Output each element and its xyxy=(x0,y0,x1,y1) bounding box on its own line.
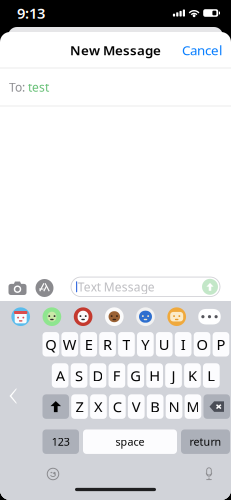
button[interactable]: F xyxy=(108,363,125,388)
staticText: W xyxy=(63,335,77,354)
button[interactable]: Send xyxy=(202,279,218,295)
staticText: U xyxy=(159,335,170,354)
button[interactable]: W xyxy=(61,332,78,357)
button[interactable]: space xyxy=(83,429,177,454)
staticText: L xyxy=(207,366,215,385)
button[interactable]: H xyxy=(146,363,163,388)
staticText: G xyxy=(130,366,141,385)
button[interactable]: C xyxy=(109,394,126,419)
button[interactable]: O xyxy=(194,332,210,357)
staticText: New Message xyxy=(70,41,161,59)
staticText: M xyxy=(186,397,199,416)
staticText: V xyxy=(132,397,141,416)
button[interactable]: S xyxy=(71,363,87,388)
staticText: E xyxy=(85,335,93,354)
staticText: Cancel xyxy=(182,41,222,59)
button[interactable]: return xyxy=(181,429,230,454)
staticText: Q xyxy=(45,335,56,354)
staticText: R xyxy=(103,335,112,354)
button[interactable]: Sticker pack 5 xyxy=(105,307,124,326)
staticText: P xyxy=(216,335,225,354)
staticText: Y xyxy=(141,335,149,354)
button[interactable]: Q xyxy=(42,332,59,357)
staticText: S xyxy=(75,366,83,385)
button[interactable]: L xyxy=(203,363,220,388)
button[interactable] xyxy=(42,394,69,419)
button[interactable]: P xyxy=(213,332,229,357)
staticText: D xyxy=(92,366,103,385)
button[interactable]: K xyxy=(184,363,201,388)
button[interactable]: A xyxy=(52,363,68,388)
button[interactable] xyxy=(203,394,230,419)
staticText: return xyxy=(189,435,221,449)
button[interactable]: X xyxy=(90,394,107,419)
button[interactable]: R xyxy=(99,332,116,357)
button[interactable]: 123 xyxy=(42,429,79,454)
button[interactable]: Emoji keyboard xyxy=(43,464,63,484)
button[interactable]: Sticker pack 2 xyxy=(11,307,30,326)
staticText: B xyxy=(150,397,160,416)
button[interactable]: I xyxy=(175,332,191,357)
button[interactable]: B xyxy=(147,394,163,419)
staticText: test xyxy=(28,79,49,95)
button[interactable]: U xyxy=(156,332,173,357)
button[interactable]: Take photo xyxy=(6,278,28,298)
button[interactable]: More apps xyxy=(198,309,221,324)
staticText: space xyxy=(115,435,144,449)
staticText: Text Message xyxy=(78,279,155,295)
button[interactable]: M xyxy=(185,394,201,419)
button[interactable]: V xyxy=(128,394,145,419)
staticText: T xyxy=(122,335,130,354)
staticText: To: xyxy=(9,79,25,95)
staticText: 123 xyxy=(52,435,70,449)
staticText: 9:13 xyxy=(17,3,45,23)
button[interactable]: J xyxy=(165,363,182,388)
button[interactable]: Y xyxy=(137,332,154,357)
button[interactable]: Dictate xyxy=(199,464,219,484)
staticText: I xyxy=(181,335,186,354)
button[interactable]: D xyxy=(90,363,106,388)
button[interactable]: G xyxy=(127,363,144,388)
staticText: X xyxy=(94,397,103,416)
staticText: A xyxy=(56,366,65,385)
button[interactable]: Sticker pack 4 xyxy=(74,307,92,326)
staticText: H xyxy=(149,366,160,385)
staticText: N xyxy=(169,397,180,416)
staticText: O xyxy=(197,335,208,354)
staticText: J xyxy=(171,366,175,385)
button[interactable]: E xyxy=(80,332,97,357)
button[interactable]: Sticker pack 3 xyxy=(42,307,61,326)
staticText: Z xyxy=(75,397,83,416)
button[interactable]: Cancel xyxy=(182,32,231,68)
button[interactable]: Sticker pack 6 xyxy=(136,307,155,326)
button[interactable]: T xyxy=(118,332,135,357)
button[interactable]: N xyxy=(166,394,182,419)
staticText: K xyxy=(188,366,197,385)
button[interactable]: Browse iMessage apps xyxy=(33,277,55,299)
button[interactable]: Sticker pack 7 xyxy=(167,307,186,326)
staticText: F xyxy=(113,366,121,385)
staticText: C xyxy=(113,397,122,416)
button[interactable]: Z xyxy=(71,394,88,419)
